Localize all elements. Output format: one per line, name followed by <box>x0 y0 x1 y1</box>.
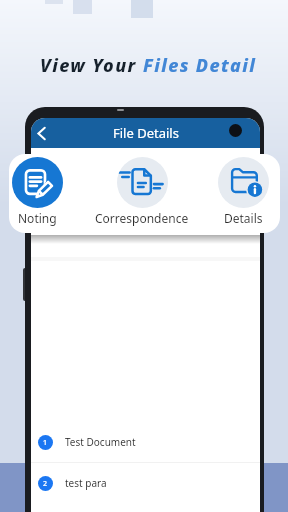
staticText: 1 <box>43 438 48 448</box>
staticText: Noting <box>18 210 57 226</box>
button[interactable]: Noting <box>9 154 97 226</box>
staticText: File Details <box>113 124 179 142</box>
staticText: Details <box>224 210 263 226</box>
staticText: Test Document <box>65 435 136 449</box>
staticText: 2 <box>43 479 48 489</box>
button[interactable]: Details <box>183 154 280 226</box>
staticText: View Your <box>40 53 143 78</box>
staticText: test para <box>65 476 107 490</box>
staticText: Correspondence <box>95 210 189 226</box>
button[interactable]: Correspondence <box>82 154 202 226</box>
button[interactable]: Back <box>31 123 51 143</box>
button[interactable]: 1 <box>31 422 260 462</box>
button[interactable]: 2 <box>31 463 260 503</box>
staticText: Files Detail <box>143 53 257 78</box>
